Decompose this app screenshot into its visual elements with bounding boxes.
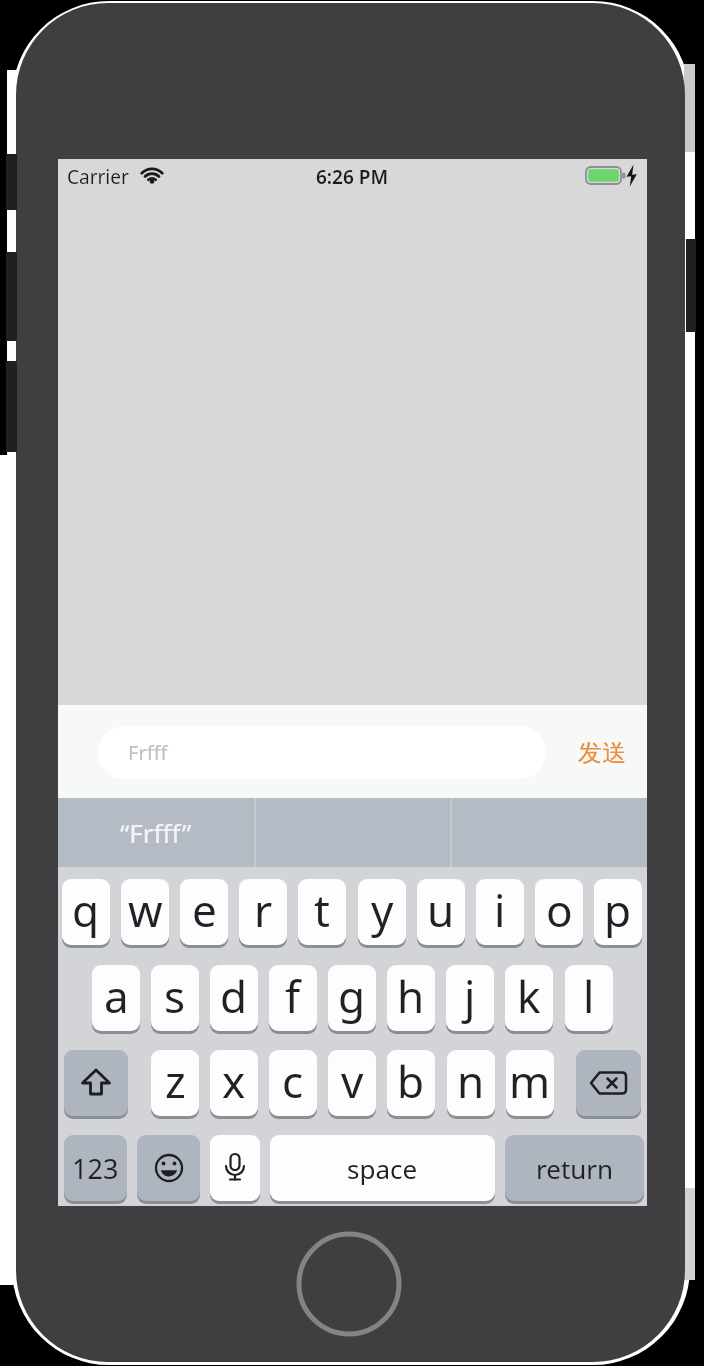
staticText: 6:26 PM	[316, 164, 389, 186]
button[interactable]: o	[535, 879, 583, 945]
staticText: k	[517, 966, 541, 1026]
button[interactable]: a	[92, 965, 140, 1031]
staticText: z	[165, 1051, 186, 1111]
button[interactable]: y	[358, 879, 406, 945]
staticText: Frfff	[128, 739, 168, 766]
button[interactable]: s	[151, 965, 199, 1031]
button[interactable]: f	[269, 965, 317, 1031]
button[interactable]: c	[269, 1050, 317, 1116]
staticText: s	[164, 966, 186, 1026]
button[interactable]	[210, 1135, 260, 1201]
staticText: n	[457, 1051, 485, 1111]
staticText: j	[464, 966, 476, 1026]
button[interactable]: x	[210, 1050, 258, 1116]
button[interactable]: Frfff	[98, 726, 546, 779]
staticText: c	[282, 1051, 304, 1111]
staticText: x	[222, 1051, 246, 1111]
button[interactable]: return	[505, 1135, 644, 1201]
button[interactable]: z	[151, 1050, 199, 1116]
staticText: “Frfff”	[120, 815, 192, 850]
staticText: o	[546, 880, 573, 940]
button[interactable]: d	[210, 965, 258, 1031]
staticText: m	[509, 1051, 551, 1111]
staticText: l	[583, 966, 595, 1026]
staticText: u	[427, 880, 455, 940]
button[interactable]	[64, 1050, 128, 1116]
button[interactable]: i	[476, 879, 524, 945]
button[interactable]: b	[387, 1050, 435, 1116]
button[interactable]: 发送	[564, 726, 640, 779]
button[interactable]	[137, 1135, 200, 1201]
button[interactable]: “Frfff”	[58, 798, 254, 867]
staticText: d	[220, 966, 248, 1026]
staticText: r	[254, 880, 273, 940]
button[interactable]: g	[328, 965, 376, 1031]
staticText: q	[72, 880, 100, 940]
button[interactable]: n	[447, 1050, 495, 1116]
staticText: g	[338, 966, 366, 1026]
button[interactable]: e	[180, 879, 228, 945]
button[interactable]: j	[446, 965, 494, 1031]
button[interactable]: space	[270, 1135, 495, 1201]
button[interactable]: p	[594, 879, 642, 945]
staticText: b	[397, 1051, 425, 1111]
button[interactable]: l	[565, 965, 613, 1031]
button[interactable]: q	[62, 879, 110, 945]
button[interactable]: h	[387, 965, 435, 1031]
staticText: space	[347, 1151, 418, 1186]
button[interactable]: v	[328, 1050, 376, 1116]
button[interactable]: w	[121, 879, 169, 945]
staticText: a	[104, 966, 129, 1026]
staticText: 123	[72, 1150, 119, 1187]
staticText: i	[494, 880, 506, 940]
staticText: e	[192, 880, 217, 940]
staticText: w	[128, 880, 163, 940]
button[interactable]: 123	[64, 1135, 127, 1201]
button[interactable]: k	[505, 965, 553, 1031]
button[interactable]: r	[239, 879, 287, 945]
staticText: h	[397, 966, 425, 1026]
staticText: Carrier	[67, 164, 129, 186]
button[interactable]	[576, 1050, 641, 1116]
button[interactable]: t	[298, 879, 346, 945]
staticText: f	[285, 966, 301, 1026]
button[interactable]: m	[506, 1050, 554, 1116]
staticText: p	[604, 880, 632, 940]
button[interactable]: u	[417, 879, 465, 945]
staticText: y	[371, 880, 394, 940]
staticText: v	[341, 1051, 364, 1111]
staticText: return	[536, 1151, 614, 1186]
staticText: t	[314, 880, 330, 940]
staticText: 发送	[578, 738, 626, 768]
